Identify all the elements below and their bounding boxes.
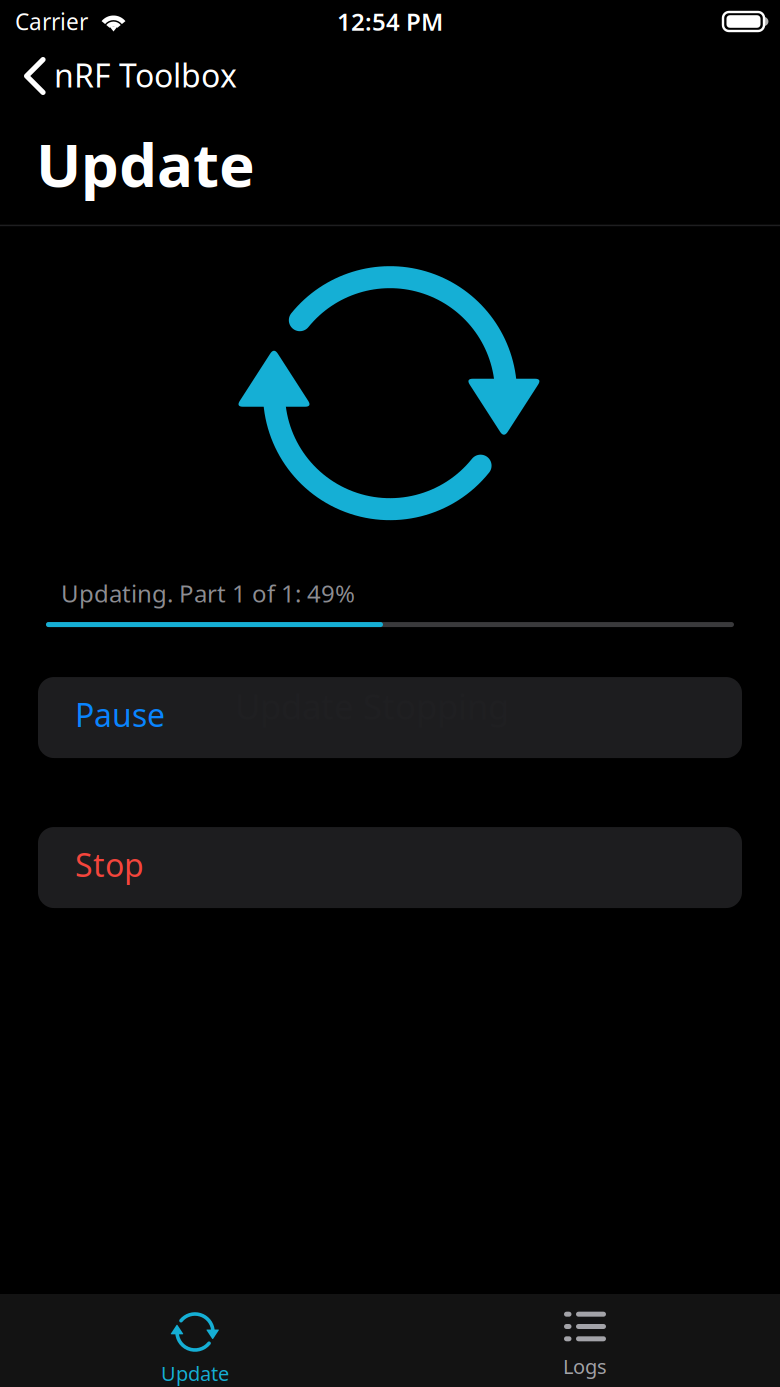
staticText: Update — [161, 1360, 229, 1387]
staticText: nRF Toolbox — [54, 54, 237, 96]
staticText: Carrier — [15, 6, 88, 36]
staticText: Pause — [75, 693, 165, 736]
staticText: Update — [36, 124, 255, 204]
staticText: Stop — [75, 843, 144, 886]
button[interactable]: Update — [0, 1294, 390, 1387]
button[interactable]: Pause — [38, 677, 742, 758]
staticText: 12:54 PM — [337, 6, 443, 37]
button[interactable]: Stop — [38, 827, 742, 908]
button[interactable]: nRF Toolbox — [0, 43, 255, 109]
staticText: Logs — [563, 1353, 607, 1380]
button[interactable]: Logs — [390, 1294, 780, 1387]
staticText: Updating. Part 1 of 1: 49% — [61, 577, 355, 609]
